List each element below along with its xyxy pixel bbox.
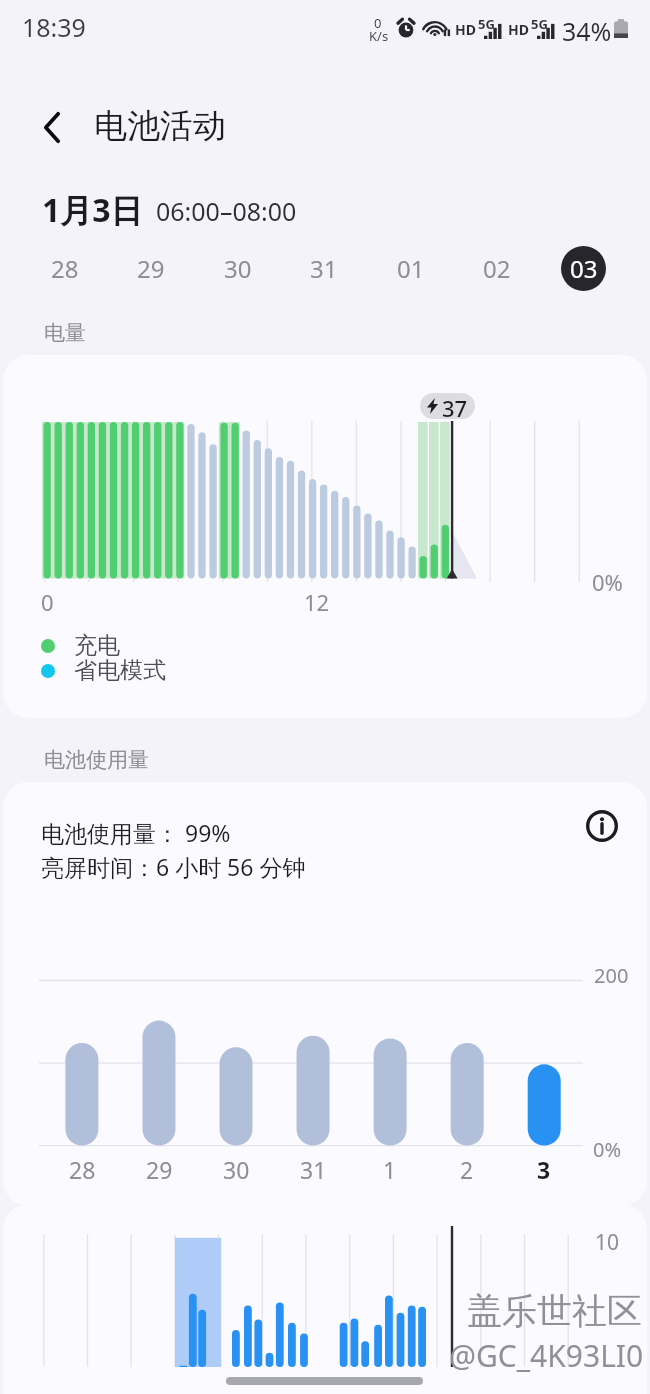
staticText: 37 [442, 393, 468, 419]
staticText: 28 [69, 1154, 96, 1180]
staticText: 29 [146, 1154, 173, 1180]
staticText: 28 [51, 252, 79, 285]
staticText: 2 [460, 1154, 474, 1180]
staticText: 29 [137, 252, 165, 285]
button[interactable]: 29 [115, 245, 187, 291]
staticText: 18:39 [22, 10, 86, 44]
staticText: 电池活动 [94, 105, 226, 147]
button[interactable]: 01 [375, 245, 447, 291]
staticText: 5G [478, 15, 495, 33]
button[interactable]: 28 [29, 245, 101, 291]
staticText: 亮屏时间：6 小时 56 分钟 [41, 851, 306, 882]
button[interactable]: 03 [547, 245, 619, 291]
staticText: 06:00–08:00 [156, 194, 297, 228]
staticText: 0% [593, 1136, 622, 1163]
staticText: 1 [383, 1154, 397, 1180]
staticText: 电量 [44, 320, 86, 346]
staticText: 0% [592, 567, 623, 597]
staticText: 30 [223, 1154, 250, 1180]
staticText: 充电 [74, 631, 120, 660]
staticText: 电池使用量 [44, 747, 149, 773]
staticText: 12 [304, 587, 330, 617]
staticText: 3 [537, 1154, 551, 1180]
button[interactable]: 02 [461, 245, 533, 291]
staticText: 0 [41, 587, 54, 617]
staticText: 31 [300, 1154, 327, 1180]
staticText: 30 [224, 252, 252, 285]
staticText: 0 [374, 14, 382, 32]
staticText: 5G [531, 15, 548, 33]
staticText: 10 [595, 1228, 620, 1257]
staticText: 盖乐世社区 [467, 1289, 642, 1333]
staticText: HD [455, 20, 476, 39]
staticText: 31 [310, 252, 338, 285]
button[interactable]: 30 [202, 245, 274, 291]
button[interactable]: 31 [288, 245, 360, 291]
staticText: @GC_4K93LI0 [449, 1335, 644, 1376]
staticText: 1月3日 [42, 188, 143, 232]
staticText: 34% [562, 14, 612, 48]
staticText: HD [508, 20, 529, 39]
staticText: 省电模式 [74, 656, 166, 685]
staticText: 200 [594, 962, 629, 989]
button[interactable]: Back [27, 102, 77, 152]
staticText: 01 [397, 252, 425, 285]
staticText: K/s [369, 27, 389, 45]
staticText: 02 [483, 252, 511, 285]
button[interactable]: Info [584, 808, 620, 844]
staticText: 03 [570, 252, 598, 285]
staticText: 电池使用量： 99% [41, 817, 231, 848]
